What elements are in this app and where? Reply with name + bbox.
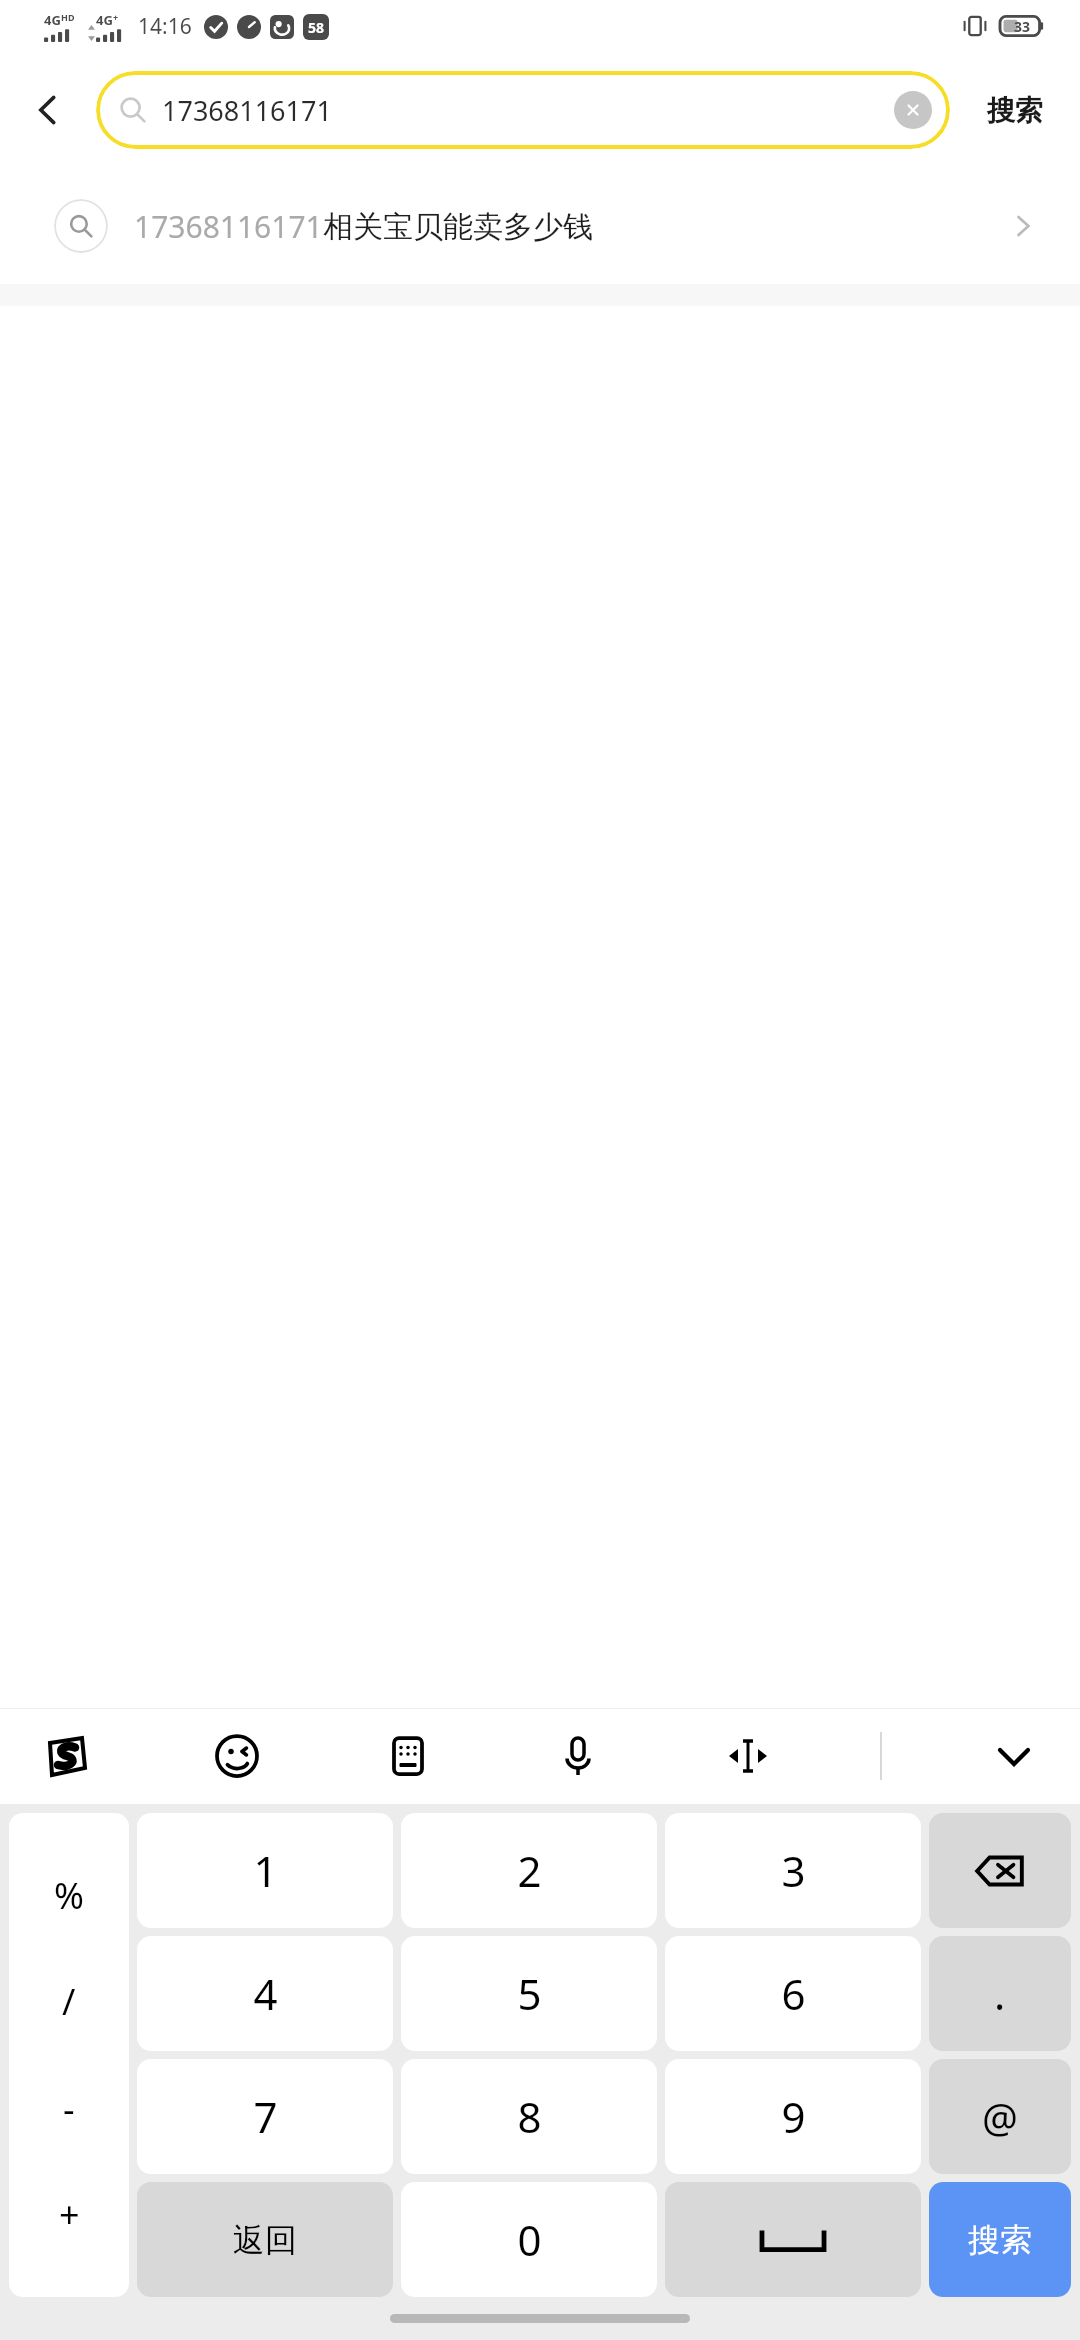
button[interactable]: 4 (137, 1936, 393, 2051)
button[interactable]: Hide keyboard (976, 1718, 1052, 1794)
button[interactable]: 3 (665, 1813, 921, 1928)
staticText: 2 (517, 1842, 542, 1899)
button[interactable]: 0 (401, 2182, 657, 2297)
button[interactable]: Space (665, 2182, 921, 2297)
button[interactable]: 8 (401, 2059, 657, 2174)
staticText: 14:16 (138, 12, 192, 41)
staticText: HD (61, 11, 75, 23)
staticText: + (113, 11, 119, 23)
button[interactable]: 返回 (137, 2182, 393, 2297)
staticText: 8 (517, 2088, 542, 2145)
button[interactable]: . (929, 1936, 1071, 2051)
staticText: 7 (253, 2088, 278, 2145)
button[interactable]: Backspace (929, 1813, 1071, 1928)
staticText: 9 (781, 2088, 806, 2145)
button[interactable]: % (9, 1813, 129, 2297)
button[interactable]: Move cursor (710, 1718, 786, 1794)
staticText: 58 (308, 18, 325, 37)
staticText: 33 (1014, 17, 1031, 36)
button[interactable]: 17368116171 (96, 71, 950, 149)
button[interactable]: 2 (401, 1813, 657, 1928)
button[interactable]: 1 (137, 1813, 393, 1928)
button[interactable]: 搜索 (929, 2182, 1071, 2297)
staticText: + (59, 2190, 80, 2239)
staticText: . (994, 1965, 1006, 2022)
button[interactable]: Voice input (540, 1718, 616, 1794)
staticText: / (62, 1977, 76, 2026)
button[interactable]: Keyboard layout (370, 1718, 446, 1794)
button[interactable]: Sogou input (28, 1718, 104, 1794)
staticText: 搜索 (968, 2220, 1032, 2260)
staticText: 0 (517, 2211, 542, 2268)
staticText: 6 (781, 1965, 806, 2022)
button[interactable]: 17368116171 (0, 168, 1080, 284)
button[interactable]: 7 (137, 2059, 393, 2174)
staticText: 4G (44, 11, 61, 29)
staticText: 4G (96, 11, 113, 29)
staticText: 搜索 (987, 93, 1043, 128)
staticText: 17368116171 (162, 92, 332, 129)
button[interactable]: Emoji (199, 1718, 275, 1794)
staticText: 4 (253, 1965, 278, 2022)
staticText: 返回 (233, 2220, 297, 2260)
button[interactable]: 9 (665, 2059, 921, 2174)
staticText: 5 (517, 1965, 542, 2022)
staticText: @ (982, 2090, 1018, 2144)
staticText: 相关宝贝能卖多少钱 (323, 208, 593, 246)
button[interactable]: 6 (665, 1936, 921, 2051)
staticText: - (63, 2084, 75, 2133)
button[interactable]: Clear (894, 91, 932, 129)
button[interactable]: Back (0, 52, 96, 168)
button[interactable]: 搜索 (950, 52, 1080, 168)
button[interactable]: 5 (401, 1936, 657, 2051)
staticText: 3 (781, 1842, 806, 1899)
staticText: 17368116171 (134, 206, 323, 247)
button[interactable]: @ (929, 2059, 1071, 2174)
staticText: % (54, 1871, 84, 1920)
staticText: 1 (253, 1842, 278, 1899)
